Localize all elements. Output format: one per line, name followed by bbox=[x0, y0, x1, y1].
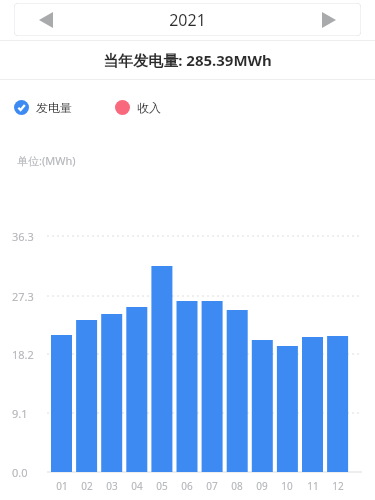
staticText: 04 bbox=[131, 479, 143, 493]
button[interactable]: Next year bbox=[307, 3, 351, 36]
staticText: 36.3 bbox=[12, 229, 34, 244]
staticText: 10 bbox=[281, 479, 293, 493]
staticText: 当年发电量: 285.39MWh bbox=[103, 50, 272, 70]
staticText: 发电量 bbox=[36, 100, 72, 115]
button[interactable]: 收入 bbox=[115, 96, 161, 118]
staticText: 05 bbox=[156, 479, 168, 493]
staticText: 01 bbox=[56, 479, 68, 493]
staticText: 2021 bbox=[169, 9, 206, 31]
staticText: 单位:(MWh) bbox=[17, 153, 76, 168]
staticText: 03 bbox=[106, 479, 118, 493]
staticText: 27.3 bbox=[12, 289, 34, 304]
staticText: 08 bbox=[231, 479, 243, 493]
staticText: 06 bbox=[181, 479, 193, 493]
staticText: 12 bbox=[332, 479, 344, 493]
button[interactable]: 发电量 bbox=[14, 96, 72, 118]
button[interactable]: Previous year bbox=[24, 3, 68, 36]
staticText: 11 bbox=[307, 479, 319, 493]
staticText: 09 bbox=[256, 479, 268, 493]
staticText: 07 bbox=[206, 479, 218, 493]
staticText: 02 bbox=[81, 479, 93, 493]
staticText: 18.2 bbox=[12, 347, 34, 362]
staticText: 收入 bbox=[137, 100, 161, 115]
staticText: 9.1 bbox=[12, 406, 28, 421]
staticText: 0.0 bbox=[12, 465, 28, 480]
